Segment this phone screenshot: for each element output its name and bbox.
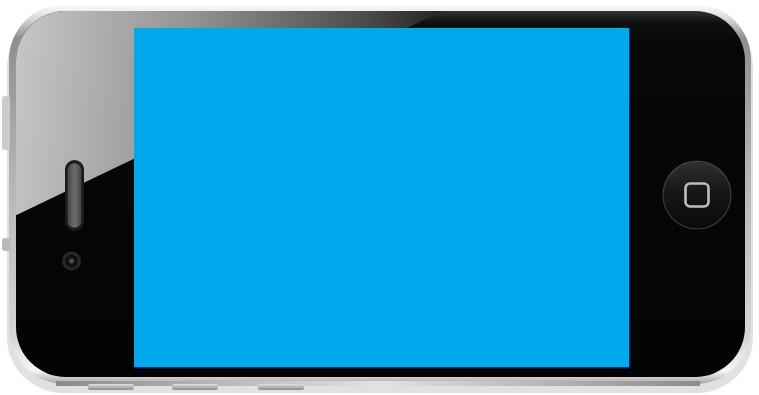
button[interactable]: Home button — [663, 161, 731, 229]
